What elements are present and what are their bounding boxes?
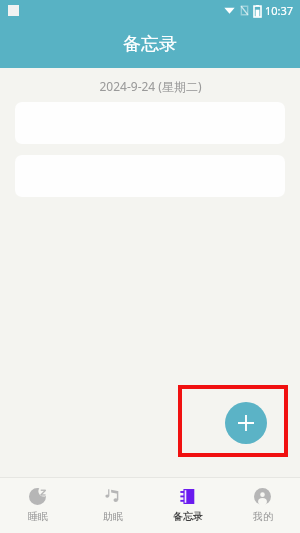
staticText: 我的 [253,510,273,523]
button[interactable]: Add memo [225,402,267,444]
button[interactable]: 我的 [225,478,300,533]
button[interactable]: 备忘录 [150,478,225,533]
button[interactable]: 助眠 [75,478,150,533]
button[interactable]: 睡眠 [0,478,75,533]
staticText: 2024-9-24 (星期二) [99,78,202,94]
staticText: 10:37 [265,3,294,18]
staticText: 助眠 [103,510,123,523]
staticText: 备忘录 [173,510,203,523]
staticText: 睡眠 [28,510,48,523]
staticText: 备忘录 [123,33,177,56]
